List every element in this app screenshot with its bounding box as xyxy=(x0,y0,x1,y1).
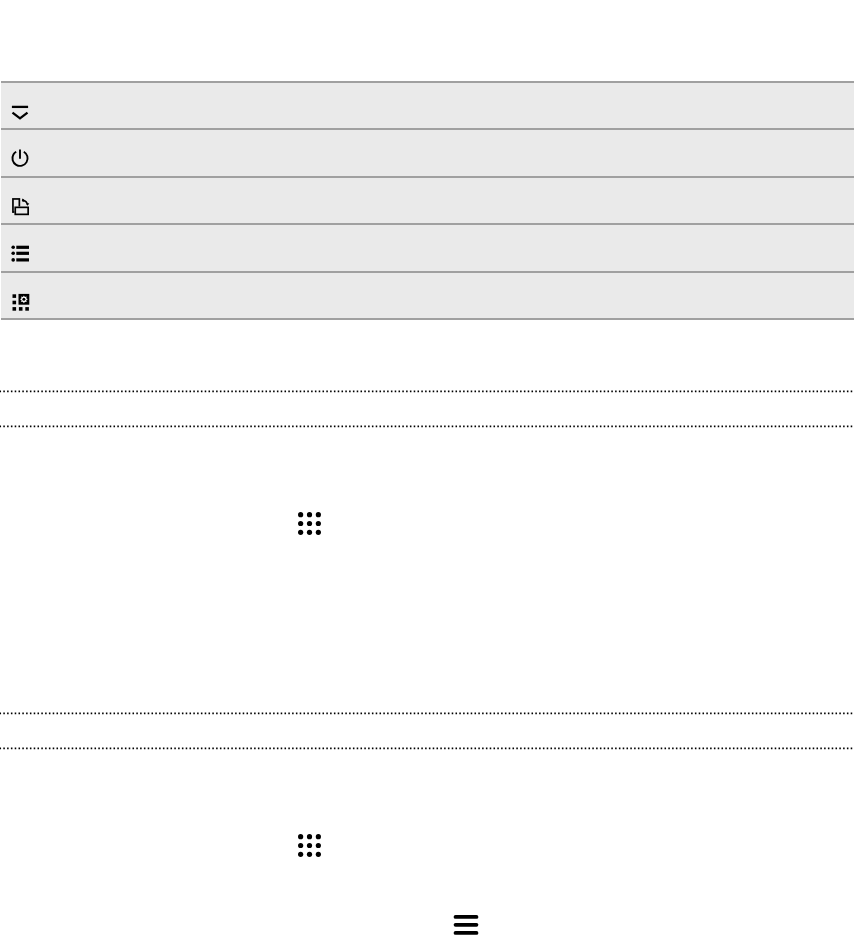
button[interactable] xyxy=(1,273,854,318)
button[interactable] xyxy=(1,225,854,271)
button[interactable]: Apps xyxy=(298,834,321,857)
button[interactable] xyxy=(1,130,854,176)
button[interactable]: Menu xyxy=(454,913,478,935)
button[interactable]: Apps xyxy=(298,512,321,535)
button[interactable] xyxy=(1,178,854,223)
button[interactable] xyxy=(1,83,854,128)
